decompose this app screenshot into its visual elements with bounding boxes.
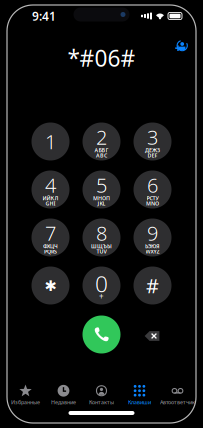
staticText: ФХЦЧ (43, 243, 58, 250)
staticText: 9 (147, 220, 158, 246)
staticText: ✱ (44, 278, 56, 294)
staticText: MNO (146, 200, 159, 207)
staticText: 7 (45, 220, 56, 246)
staticText: Избранные (11, 399, 40, 406)
staticText: 3 (147, 124, 158, 150)
button[interactable]: 7 (31, 218, 69, 256)
button[interactable]: ✱ (31, 266, 69, 304)
staticText: Автоответчик (160, 399, 195, 406)
button[interactable]: 9 (133, 218, 171, 256)
button[interactable]: # (133, 266, 171, 304)
button[interactable]: Избранные (6, 385, 44, 405)
button[interactable]: 8 (82, 218, 120, 256)
staticText: 6 (147, 172, 158, 198)
staticText: 1 (45, 128, 56, 155)
button[interactable]: 5 (82, 170, 120, 208)
staticText: 0 (95, 268, 108, 298)
staticText: *#06# (67, 43, 135, 73)
button[interactable]: Недавние (44, 385, 82, 405)
staticText: 4 (45, 172, 56, 198)
button[interactable]: Автоответчик (158, 385, 196, 405)
staticText: МНОП (93, 195, 110, 202)
staticText: GHI (45, 200, 55, 207)
button[interactable]: Удалить (138, 324, 166, 348)
button[interactable]: 4 (31, 170, 69, 208)
staticText: ШЩЪЫ (91, 243, 112, 250)
button[interactable]: 3 (133, 122, 171, 160)
staticText: PQRS (44, 248, 57, 255)
button[interactable]: 1 (31, 122, 69, 160)
staticText: # (146, 272, 159, 299)
staticText: ABC (96, 152, 107, 159)
staticText: АБВГ (94, 147, 108, 154)
button[interactable]: 0 (82, 266, 120, 304)
staticText: ДЕЖЗ (145, 147, 160, 154)
button[interactable]: 2 (82, 122, 120, 160)
staticText: 5 (96, 172, 107, 198)
staticText: Недавние (51, 399, 76, 406)
staticText: TUV (96, 248, 106, 255)
staticText: WXYZ (145, 248, 159, 255)
staticText: 9:41 (32, 8, 56, 24)
staticText: JKL (97, 200, 105, 207)
staticText: 2 (96, 124, 107, 150)
staticText: Клавиши (128, 399, 151, 406)
staticText: РСТУ (146, 195, 158, 202)
staticText: + (99, 291, 104, 302)
button[interactable]: Добавить контакт (170, 35, 192, 57)
staticText: Контакты (89, 399, 114, 406)
button[interactable]: Вызов (82, 315, 120, 353)
button[interactable]: 6 (133, 170, 171, 208)
button[interactable]: Контакты (82, 385, 120, 405)
staticText: ИЙКЛ (42, 195, 58, 202)
staticText: 8 (96, 220, 107, 246)
button[interactable]: Клавиши (120, 385, 158, 405)
staticText: ЬЭЮЯ (145, 243, 160, 250)
staticText: DEF (147, 152, 157, 159)
